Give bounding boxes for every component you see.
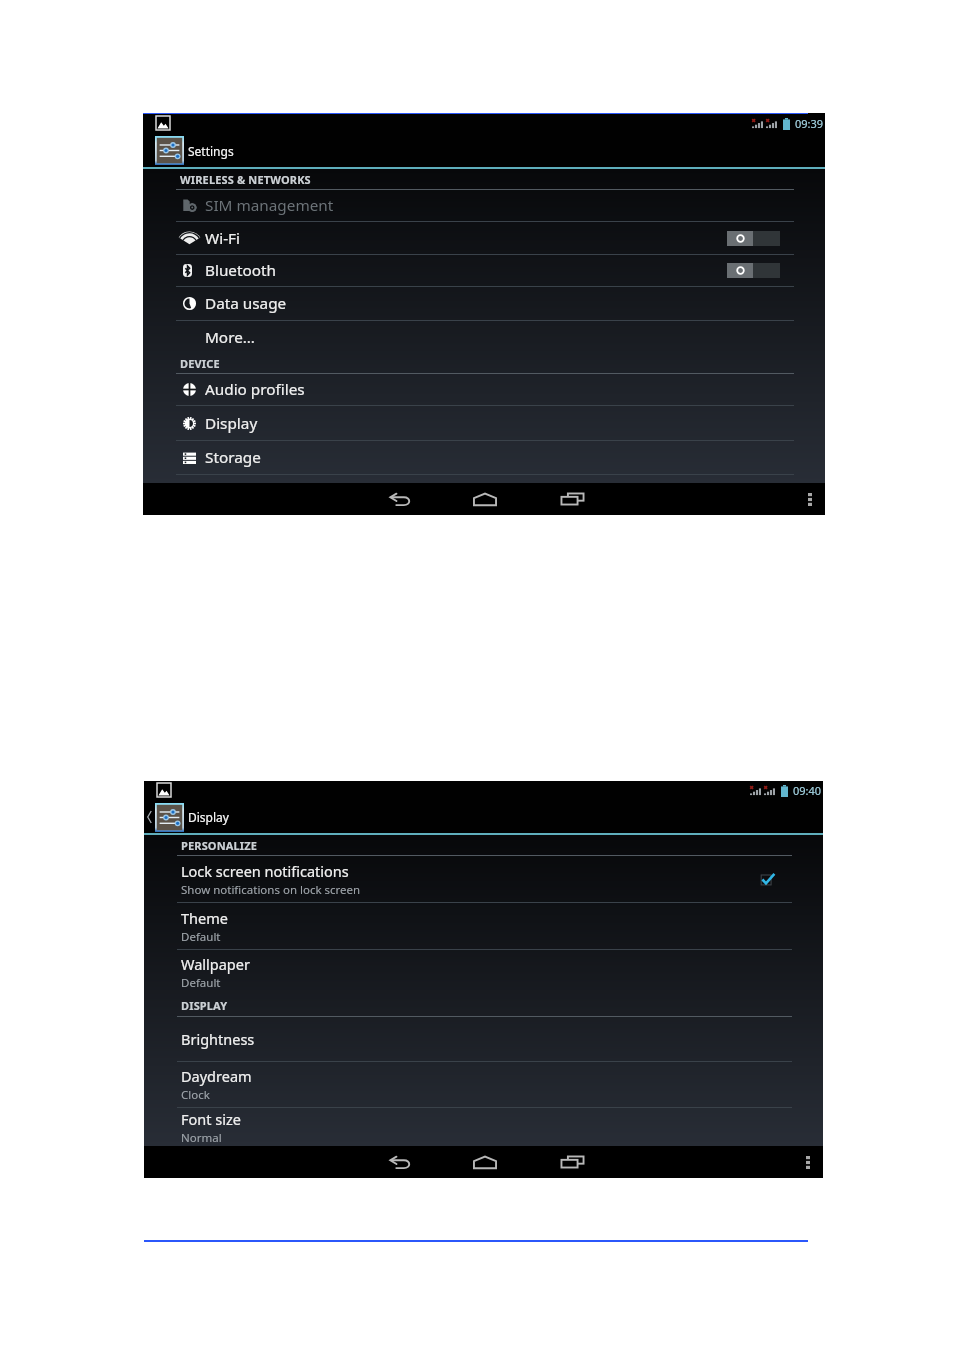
staticText: Storage — [205, 447, 261, 468]
button[interactable]: Wallpaper — [144, 950, 823, 995]
staticText: Lock screen notifications — [181, 861, 349, 881]
staticText: Theme — [181, 908, 228, 928]
button[interactable]: Back — [371, 1146, 429, 1178]
button[interactable]: More… — [143, 321, 825, 353]
staticText: Audio profiles — [205, 379, 305, 400]
button[interactable]: Wi-Fi on/off — [727, 231, 780, 246]
staticText: SIM management — [205, 195, 334, 216]
staticText: 09:40 — [793, 783, 822, 798]
staticText: DEVICE — [180, 356, 220, 371]
staticText: Normal — [181, 1130, 222, 1146]
staticText: Default — [181, 975, 221, 991]
button[interactable]: Back — [371, 483, 429, 515]
staticText: Show notifications on lock screen — [181, 882, 361, 898]
button[interactable]: Lock screen notifications checkbox — [760, 872, 775, 887]
staticText: WIRELESS & NETWORKS — [180, 172, 311, 187]
staticText: Settings — [188, 143, 234, 159]
staticText: Daydream — [181, 1066, 252, 1086]
button[interactable]: Settings — [155, 132, 242, 169]
button[interactable]: More options — [798, 1146, 818, 1178]
staticText: More… — [205, 327, 255, 348]
staticText: DISPLAY — [181, 998, 228, 1013]
button[interactable]: Data usage — [143, 287, 825, 320]
staticText: Font size — [181, 1109, 241, 1129]
button[interactable]: Daydream — [144, 1062, 823, 1107]
button[interactable]: Display — [143, 406, 825, 440]
button[interactable]: More options — [800, 483, 820, 515]
button[interactable]: Bluetooth on/off — [727, 263, 780, 278]
staticText: Display — [205, 413, 258, 434]
staticText: Brightness — [181, 1029, 255, 1049]
button[interactable]: Wi-Fi — [143, 222, 825, 254]
staticText: Wi-Fi — [205, 228, 240, 249]
button[interactable]: SIM management — [143, 190, 825, 221]
staticText: Bluetooth — [205, 260, 276, 281]
button[interactable]: Bluetooth — [143, 255, 825, 286]
staticText: Default — [181, 929, 221, 945]
button[interactable]: Home — [456, 483, 514, 515]
button[interactable]: Lock screen notifications — [144, 856, 823, 902]
button[interactable]: Storage — [143, 441, 825, 474]
button[interactable]: Font size — [144, 1108, 823, 1146]
staticText: Clock — [181, 1087, 210, 1103]
button[interactable]: Home — [456, 1146, 514, 1178]
staticText: 09:39 — [795, 116, 824, 131]
staticText: PERSONALIZE — [181, 838, 258, 853]
button[interactable]: Brightness — [144, 1017, 823, 1061]
staticText: Data usage — [205, 293, 287, 314]
button[interactable]: Display — [155, 799, 237, 835]
staticText: Display — [188, 809, 229, 825]
button[interactable]: Recent apps — [543, 1146, 601, 1178]
button[interactable]: Audio profiles — [143, 374, 825, 405]
button[interactable]: Recent apps — [543, 483, 601, 515]
staticText: Wallpaper — [181, 954, 250, 974]
button[interactable]: Theme — [144, 903, 823, 949]
button[interactable]: Navigate up — [144, 799, 155, 835]
